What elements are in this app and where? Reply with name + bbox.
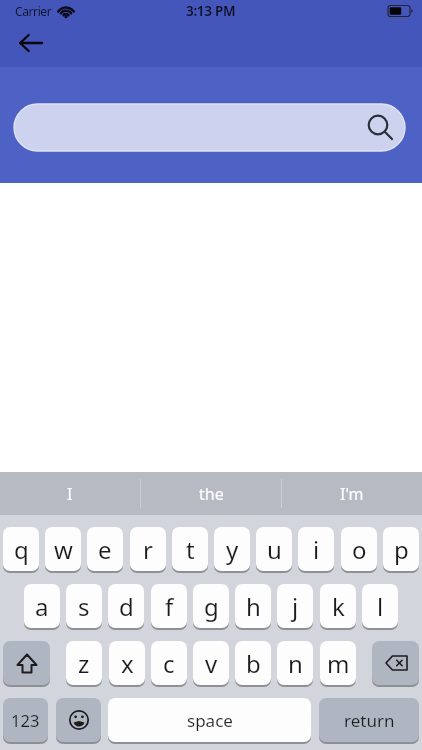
staticText: r — [143, 533, 153, 566]
button[interactable] — [6, 26, 56, 60]
button[interactable]: t — [172, 527, 208, 573]
button[interactable] — [56, 698, 101, 744]
staticText: h — [246, 590, 261, 623]
staticText: I'm — [340, 483, 364, 505]
button[interactable]: i — [298, 527, 334, 573]
button[interactable]: space — [108, 698, 311, 744]
staticText: s — [78, 590, 90, 623]
button[interactable]: a — [24, 584, 60, 630]
staticText: space — [187, 709, 233, 732]
button[interactable]: c — [151, 641, 187, 687]
staticText: c — [163, 647, 175, 680]
staticText: f — [165, 590, 174, 623]
staticText: 3:13 PM — [186, 2, 236, 20]
button[interactable]: q — [3, 527, 39, 573]
button[interactable]: y — [214, 527, 250, 573]
button[interactable]: the — [141, 472, 281, 515]
staticText: the — [199, 483, 224, 505]
button[interactable]: z — [66, 641, 102, 687]
staticText: n — [288, 647, 303, 680]
button[interactable]: p — [383, 527, 419, 573]
button[interactable]: m — [320, 641, 356, 687]
button[interactable]: n — [277, 641, 313, 687]
staticText: return — [344, 709, 395, 732]
button[interactable]: k — [320, 584, 356, 630]
staticText: I — [67, 483, 73, 505]
button[interactable]: d — [108, 584, 144, 630]
staticText: b — [246, 647, 261, 680]
button[interactable]: f — [151, 584, 187, 630]
button[interactable]: return — [319, 698, 419, 744]
staticText: g — [204, 590, 219, 623]
button[interactable]: h — [235, 584, 271, 630]
staticText: q — [14, 533, 29, 566]
staticText: 123 — [11, 709, 40, 731]
staticText: t — [186, 533, 195, 566]
staticText: d — [119, 590, 134, 623]
staticText: z — [78, 647, 90, 680]
staticText: k — [332, 590, 345, 623]
staticText: p — [394, 533, 409, 566]
staticText: y — [226, 533, 239, 566]
button[interactable]: j — [277, 584, 313, 630]
staticText: v — [205, 647, 218, 680]
staticText: a — [35, 590, 49, 623]
button[interactable]: o — [341, 527, 377, 573]
button[interactable] — [372, 641, 419, 687]
button[interactable]: g — [193, 584, 229, 630]
staticText: u — [267, 533, 282, 566]
staticText: Carrier — [15, 3, 52, 19]
staticText: l — [377, 590, 384, 623]
button[interactable] — [14, 104, 405, 151]
button[interactable]: v — [193, 641, 229, 687]
button[interactable]: I'm — [282, 472, 422, 515]
staticText: o — [352, 533, 367, 566]
staticText: j — [292, 590, 299, 623]
staticText: m — [327, 647, 350, 680]
staticText: x — [121, 647, 134, 680]
staticText: i — [313, 533, 320, 566]
button[interactable]: s — [66, 584, 102, 630]
button[interactable]: I — [0, 472, 140, 515]
button[interactable]: x — [109, 641, 145, 687]
button[interactable]: w — [45, 527, 81, 573]
button[interactable] — [3, 641, 50, 687]
button[interactable]: b — [235, 641, 271, 687]
button[interactable]: 123 — [3, 698, 48, 744]
staticText: w — [54, 533, 73, 566]
button[interactable]: l — [362, 584, 398, 630]
button[interactable]: u — [256, 527, 292, 573]
button[interactable]: r — [130, 527, 166, 573]
staticText: e — [98, 533, 112, 566]
button[interactable]: e — [87, 527, 123, 573]
